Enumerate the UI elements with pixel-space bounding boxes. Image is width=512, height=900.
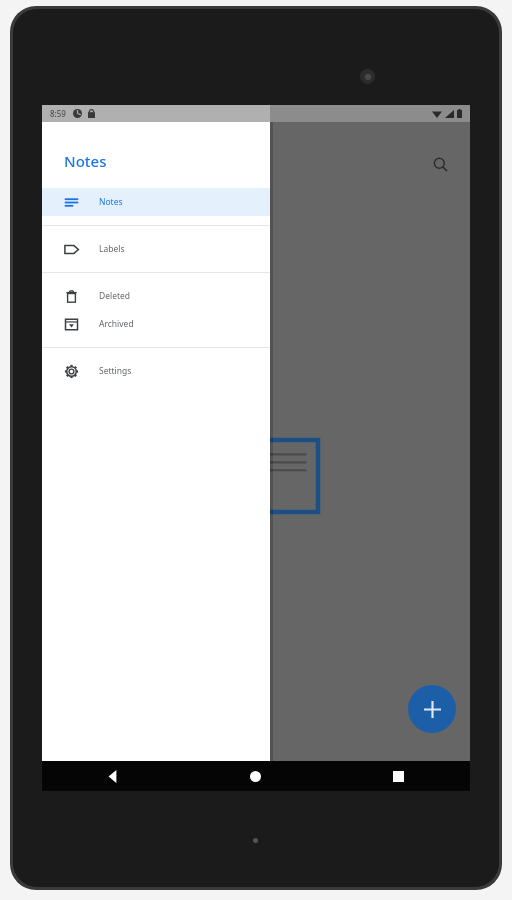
button[interactable]: Notes bbox=[42, 188, 270, 216]
button[interactable]: Recent apps bbox=[327, 761, 470, 791]
button[interactable]: Home bbox=[184, 761, 327, 791]
staticText: Notes bbox=[64, 151, 107, 171]
button[interactable]: Back bbox=[42, 761, 184, 791]
button[interactable]: Labels bbox=[42, 235, 270, 263]
button[interactable]: Add note bbox=[408, 685, 456, 733]
staticText: Labels bbox=[99, 243, 125, 255]
staticText: 8:59 bbox=[50, 108, 66, 119]
staticText: Settings bbox=[99, 365, 132, 377]
button[interactable]: Archived bbox=[42, 310, 270, 338]
button[interactable]: Settings bbox=[42, 357, 270, 385]
staticText: Archived bbox=[99, 318, 134, 330]
staticText: Notes bbox=[99, 196, 123, 208]
button[interactable]: Search bbox=[424, 148, 456, 180]
button[interactable]: Deleted bbox=[42, 282, 270, 310]
staticText: Deleted bbox=[99, 290, 131, 302]
